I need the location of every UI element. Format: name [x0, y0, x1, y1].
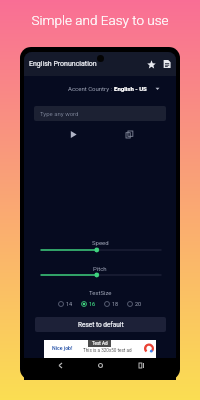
button[interactable]: Reset to default: [35, 317, 166, 332]
staticText: TextSize: [89, 289, 112, 296]
button[interactable]: Back: [53, 358, 67, 372]
button[interactable]: 20: [127, 301, 142, 307]
staticText: This is a 320x50 test ad: [83, 348, 132, 353]
staticText: Type any word: [40, 110, 79, 117]
button[interactable]: 14: [58, 301, 73, 307]
staticText: Simple and Easy to use: [0, 12, 200, 28]
button[interactable]: 16: [81, 301, 96, 307]
staticText: 20: [135, 301, 142, 307]
button[interactable]: 18: [104, 301, 119, 307]
staticText: English - US: [114, 85, 147, 92]
staticText: Pitch: [93, 265, 107, 272]
button[interactable]: Accent Country :: [24, 82, 176, 95]
button[interactable]: Favorite: [143, 56, 159, 72]
button[interactable]: Speed: [38, 246, 164, 254]
staticText: Reset to default: [78, 321, 124, 329]
button[interactable]: Advertisement: [44, 340, 156, 358]
staticText: 16: [89, 301, 96, 307]
staticText: Speed: [92, 239, 109, 246]
button[interactable]: Saved words: [159, 56, 175, 72]
button[interactable]: Recent apps: [134, 358, 148, 372]
button[interactable]: Copy: [121, 126, 137, 142]
staticText: Nice job!: [52, 345, 73, 351]
staticText: 18: [112, 301, 119, 307]
button[interactable]: Home: [93, 358, 107, 372]
button[interactable]: Pitch: [38, 271, 164, 279]
button[interactable]: Play: [65, 126, 81, 142]
staticText: Accent Country :: [68, 85, 112, 92]
staticText: Test Ad: [92, 341, 108, 346]
button[interactable]: Type any word: [34, 106, 166, 121]
staticText: English Pronunciation: [29, 60, 97, 68]
staticText: 14: [66, 301, 73, 307]
